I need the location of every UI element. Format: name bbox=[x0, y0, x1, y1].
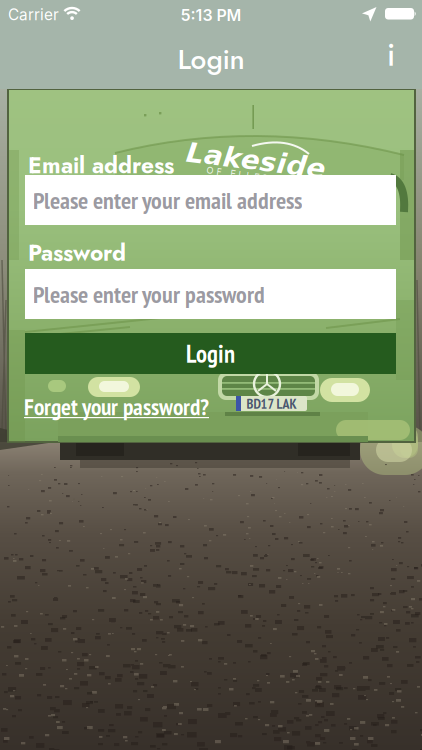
staticText: Email address bbox=[28, 149, 174, 182]
staticText: Login bbox=[186, 337, 235, 369]
staticText: Please enter your email address bbox=[33, 184, 302, 216]
staticText: O F E L L E S M E R E bbox=[206, 172, 303, 182]
button[interactable]: Please enter your password bbox=[25, 269, 396, 319]
staticText: 5:13 PM bbox=[180, 5, 241, 25]
staticText: Login bbox=[177, 39, 244, 79]
button[interactable]: Please enter your email address bbox=[25, 175, 396, 225]
staticText: Lakeside bbox=[186, 144, 326, 177]
button[interactable]: Forget your password? bbox=[24, 391, 209, 422]
staticText: Password bbox=[28, 236, 126, 269]
staticText: i bbox=[387, 33, 395, 77]
button[interactable]: Login bbox=[25, 333, 396, 374]
staticText: Carrier bbox=[8, 5, 59, 24]
staticText: Please enter your password bbox=[33, 278, 265, 310]
staticText: BD17 LAK bbox=[246, 394, 296, 412]
button[interactable]: Info bbox=[376, 40, 406, 70]
staticText: Forget your password? bbox=[24, 391, 209, 422]
